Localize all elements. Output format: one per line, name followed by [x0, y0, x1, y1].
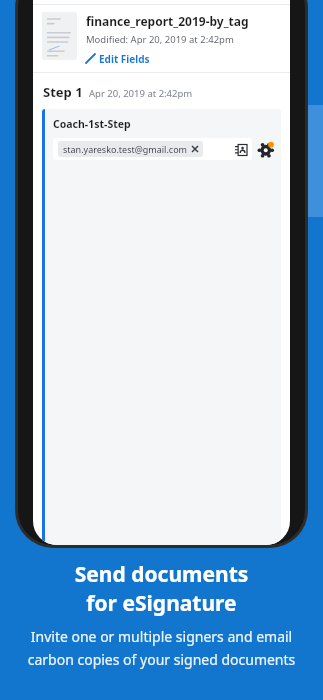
button[interactable]: finance_report_2019-by_tag — [33, 5, 290, 72]
staticText: Invite one or multiple signers and email… — [12, 627, 311, 669]
staticText: Edit Fields — [99, 52, 150, 65]
button[interactable]: Coach-1st-Step — [42, 109, 281, 545]
button[interactable]: Signer settings — [259, 142, 274, 157]
button[interactable]: stan.yaresko.test@gmail.com — [53, 138, 252, 160]
staticText: for eSignature — [12, 589, 311, 618]
staticText: Coach-1st-Step — [53, 117, 131, 131]
staticText: Apr 20, 2019 at 2:42pm — [89, 87, 193, 100]
staticText: Step 1 — [43, 83, 83, 101]
staticText: Send documents — [12, 560, 311, 589]
button[interactable]: Choose contact — [234, 143, 247, 156]
staticText: Modified: Apr 20, 2019 at 2:42pm — [86, 33, 234, 46]
button[interactable]: Edit Fields — [86, 52, 150, 65]
staticText: stan.yaresko.test@gmail.com — [63, 143, 188, 155]
staticText: finance_report_2019-by_tag — [86, 13, 249, 29]
